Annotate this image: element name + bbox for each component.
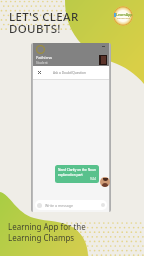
staticText: Ask a Doubt/Question (53, 71, 86, 75)
staticText: learning app (117, 17, 131, 20)
button[interactable]: Need Clarity on the Noun explanation par… (55, 165, 99, 183)
button[interactable]: App logo (113, 6, 133, 26)
staticText: Learning App for the Learning Champs (8, 221, 86, 243)
staticText: Write a message (45, 203, 74, 208)
staticText: 9:24 (90, 177, 96, 181)
button[interactable]: Write a message (37, 200, 105, 210)
staticText: LET'S CLEAR DOUBTS! (9, 9, 79, 37)
staticText: Student (36, 61, 48, 65)
staticText: Fathima (36, 55, 52, 61)
staticText: Need Clarity on the Noun explanation par… (58, 168, 96, 177)
staticText: LearnApp (116, 12, 133, 17)
